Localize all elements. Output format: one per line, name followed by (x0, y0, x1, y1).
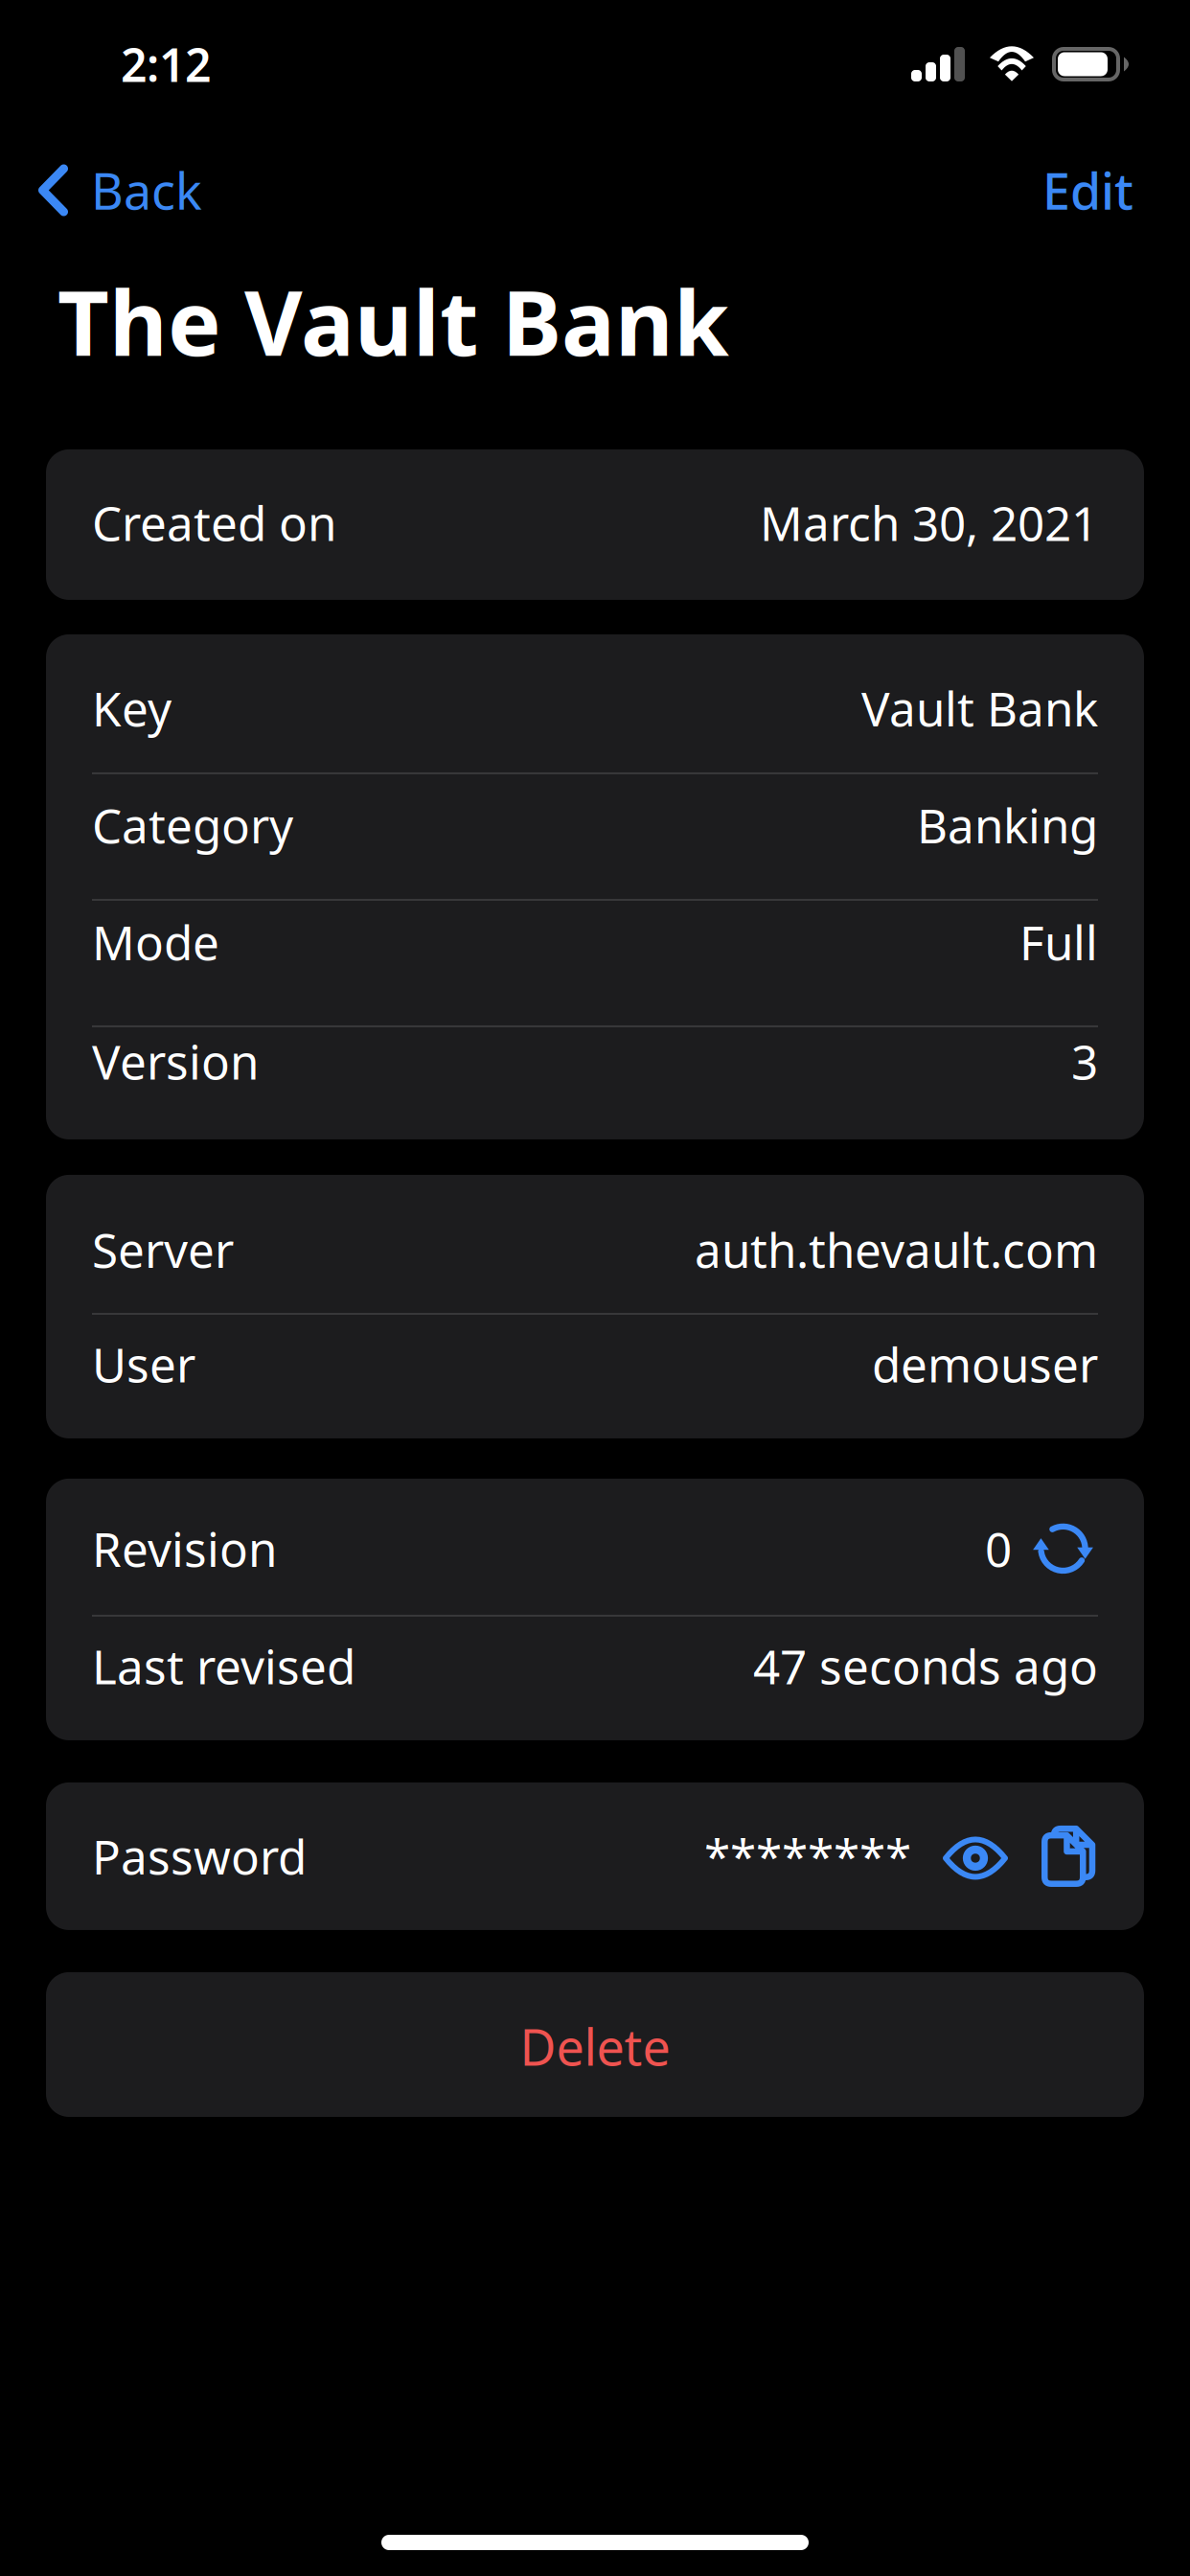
staticText: Category (92, 794, 293, 856)
staticText: 3 (1071, 1030, 1098, 1093)
button[interactable]: Edit (1042, 142, 1190, 239)
staticText: Revision (92, 1517, 277, 1580)
staticText: auth.thevault.com (695, 1218, 1098, 1281)
staticText: Delete (520, 2013, 670, 2080)
staticText: Edit (1042, 157, 1133, 223)
staticText: Version (92, 1030, 259, 1093)
staticText: demouser (872, 1333, 1098, 1396)
button[interactable]: Copy password (1008, 1826, 1098, 1887)
staticText: 2:12 (121, 34, 211, 95)
staticText: Key (92, 677, 172, 740)
staticText: Mode (92, 911, 219, 973)
button[interactable]: Show password (911, 1835, 1008, 1878)
staticText: Last revised (92, 1635, 355, 1697)
staticText: March 30, 2021 (760, 491, 1098, 554)
button[interactable]: Delete (0, 1972, 1190, 2117)
staticText: Banking (917, 794, 1098, 856)
staticText: Password (92, 1825, 307, 1888)
staticText: ******** (704, 1825, 911, 1888)
staticText: Full (1019, 911, 1098, 973)
staticText: Vault Bank (861, 677, 1098, 740)
button[interactable]: Refresh revision (1012, 1517, 1098, 1580)
staticText: Back (91, 157, 202, 223)
staticText: 0 (985, 1517, 1012, 1580)
staticText: Created on (92, 491, 336, 554)
staticText: User (92, 1333, 195, 1396)
staticText: The Vault Bank (57, 262, 729, 380)
staticText: Server (92, 1218, 234, 1281)
button[interactable]: Back (0, 142, 202, 239)
staticText: 47 seconds ago (753, 1635, 1098, 1697)
